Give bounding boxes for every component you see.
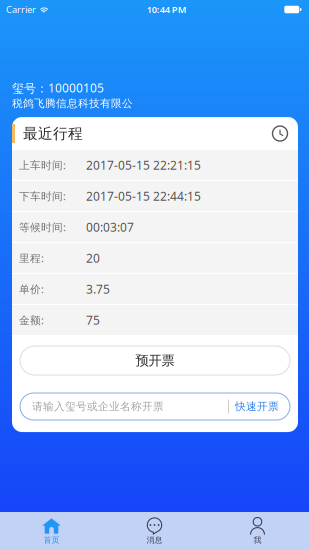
- staticText: 00:03:07: [86, 219, 134, 235]
- staticText: 10:44 PM: [147, 3, 187, 16]
- staticText: 最近行程: [23, 124, 83, 142]
- staticText: 金额:: [19, 313, 44, 327]
- staticText: 2017-05-15 22:21:15: [86, 157, 201, 173]
- staticText: 20: [86, 250, 100, 266]
- staticText: 2017-05-15 22:44:15: [86, 188, 201, 204]
- staticText: 税鸽飞腾信息科技有限公: [12, 97, 133, 110]
- staticText: 单价:: [19, 282, 44, 296]
- button[interactable]: 我: [206, 512, 309, 550]
- button[interactable]: 消息: [103, 512, 206, 550]
- staticText: 消息: [146, 535, 162, 545]
- staticText: 75: [86, 312, 100, 328]
- button[interactable]: 预开票: [20, 346, 290, 375]
- staticText: 玺号：10000105: [12, 80, 104, 96]
- staticText: 下车时间:: [19, 189, 66, 203]
- button[interactable]: 首页: [0, 512, 103, 550]
- staticText: 请输入玺号或企业名称开票: [32, 400, 164, 413]
- staticText: 我: [253, 535, 261, 545]
- button[interactable]: 请输入玺号或企业名称开票: [20, 393, 290, 420]
- staticText: 预开票: [135, 352, 174, 369]
- staticText: 上车时间:: [19, 158, 66, 172]
- staticText: Carrier: [6, 3, 36, 16]
- staticText: 等候时间:: [19, 220, 66, 234]
- staticText: 3.75: [86, 281, 110, 297]
- staticText: 里程:: [19, 251, 44, 265]
- staticText: 首页: [43, 535, 59, 545]
- staticText: 快速开票: [235, 400, 279, 413]
